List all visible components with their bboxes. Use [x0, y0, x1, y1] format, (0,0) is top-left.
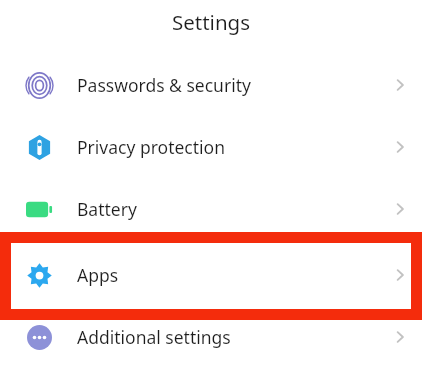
staticText: Apps: [77, 263, 119, 287]
button[interactable]: Privacy protection: [0, 116, 422, 178]
staticText: Settings: [172, 8, 251, 36]
button[interactable]: Apps: [0, 244, 422, 306]
staticText: Passwords & security: [77, 73, 251, 97]
button[interactable]: Passwords & security: [0, 54, 422, 116]
button[interactable]: Battery: [0, 178, 422, 240]
staticText: Privacy protection: [77, 135, 225, 159]
staticText: Additional settings: [77, 325, 231, 349]
staticText: Battery: [77, 197, 137, 221]
button[interactable]: Additional settings: [0, 306, 422, 368]
